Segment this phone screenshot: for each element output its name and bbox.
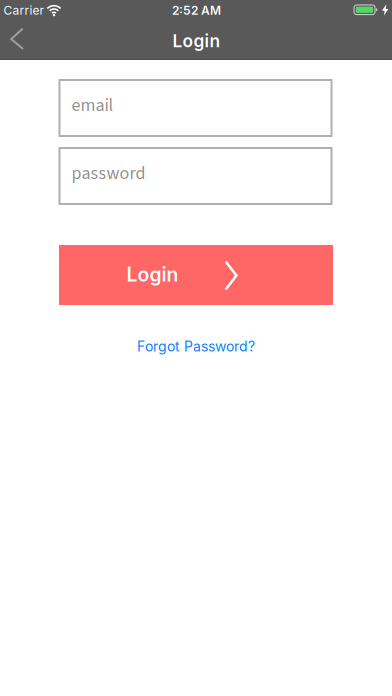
staticText: email: [71, 93, 113, 118]
button[interactable]: Login: [59, 245, 333, 305]
staticText: Login: [126, 263, 178, 286]
button[interactable]: password: [59, 148, 331, 204]
staticText: Carrier: [3, 3, 44, 18]
button[interactable]: Forgot Password?: [137, 338, 255, 355]
button[interactable]: Back: [10, 27, 24, 50]
staticText: Login: [172, 30, 220, 51]
staticText: Forgot Password?: [137, 338, 255, 355]
staticText: 2:52 AM: [172, 3, 221, 18]
button[interactable]: email: [59, 80, 331, 136]
staticText: password: [71, 161, 145, 186]
